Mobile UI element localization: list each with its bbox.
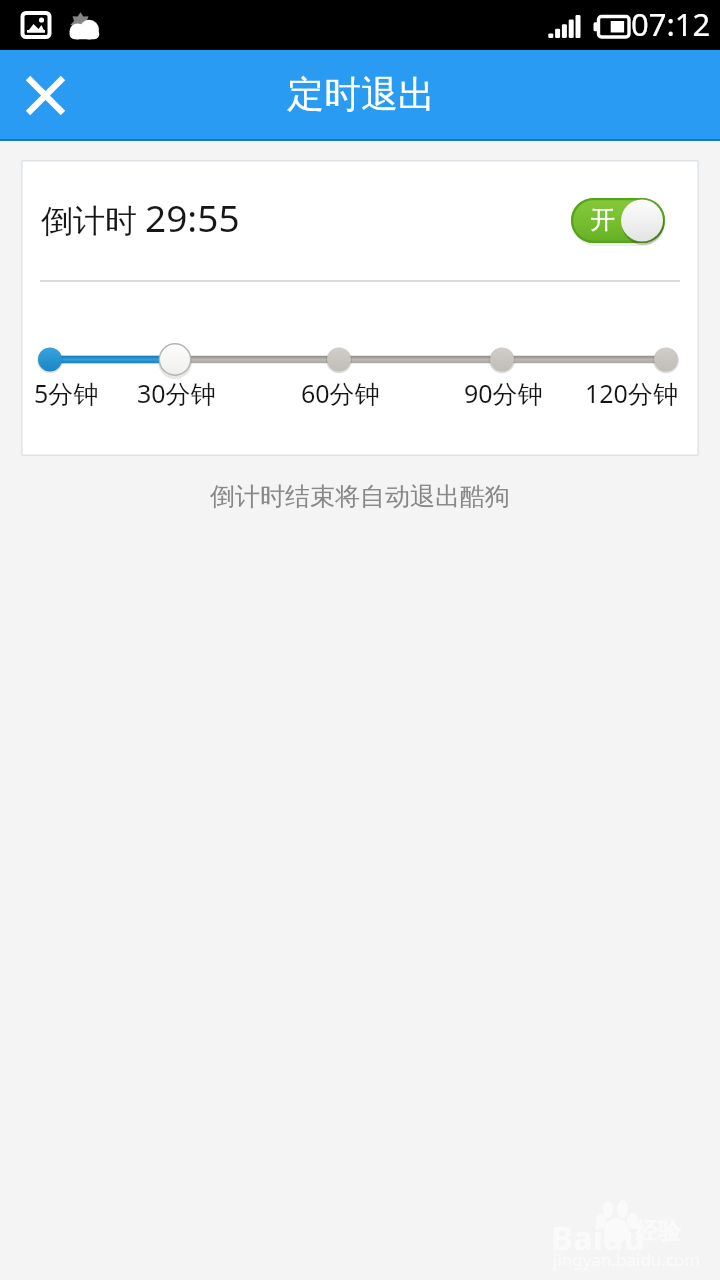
button[interactable]: 5 minutes [27, 340, 107, 412]
button[interactable]: 60 minutes [293, 340, 387, 412]
staticText: 倒计时结束将自动退出酷狗 [0, 481, 720, 512]
staticText: 60分钟 [301, 376, 380, 410]
staticText: 5分钟 [34, 376, 99, 410]
staticText: 07:12 [631, 3, 711, 45]
staticText: 29:55 [145, 192, 240, 242]
staticText: 倒计时 [41, 201, 137, 241]
staticText: 120分钟 [585, 376, 678, 410]
button[interactable]: Countdown switch on [571, 198, 665, 243]
button[interactable]: 30 minutes [129, 340, 223, 412]
button[interactable]: 90 minutes [456, 340, 550, 412]
button[interactable]: 倒计时 [21, 160, 699, 280]
staticText: 30分钟 [137, 376, 216, 410]
button[interactable]: Close [0, 50, 91, 141]
button[interactable]: 120 minutes [577, 340, 687, 412]
staticText: 开 [590, 204, 615, 235]
staticText: 定时退出 [287, 71, 435, 118]
staticText: 90分钟 [464, 376, 543, 410]
